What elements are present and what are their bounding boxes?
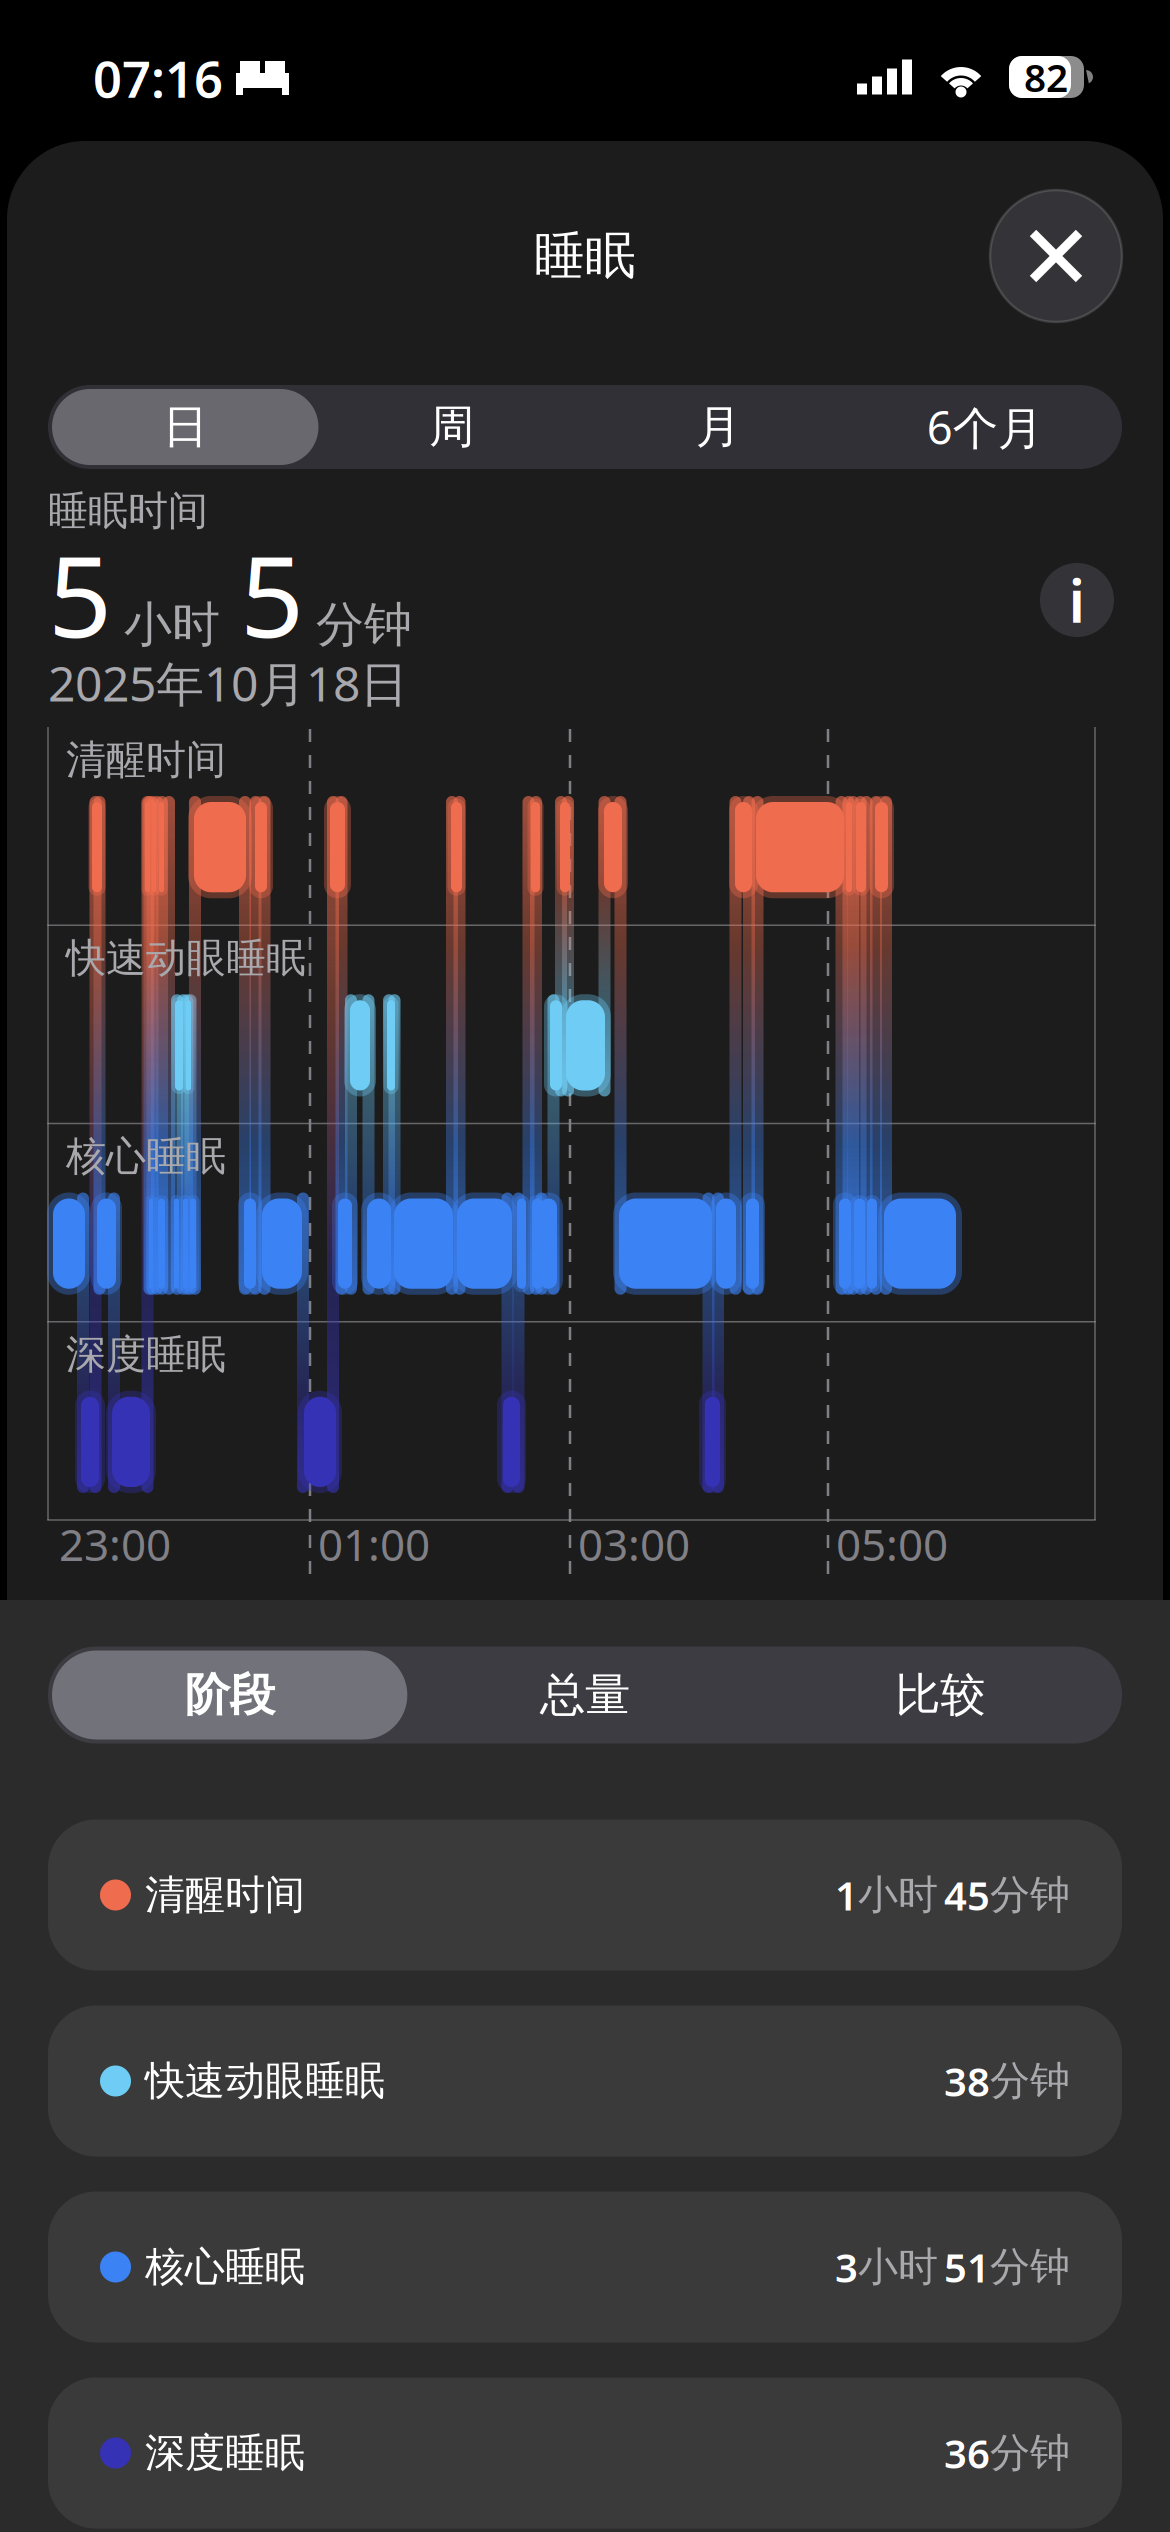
staticText: 比较: [895, 1667, 985, 1723]
button[interactable]: 总量: [407, 1650, 763, 1739]
button[interactable]: 信息: [1040, 563, 1114, 637]
button[interactable]: 6个月: [851, 389, 1118, 465]
staticText: 5: [48, 520, 112, 668]
button[interactable]: 周: [318, 389, 585, 465]
staticText: i: [1068, 561, 1085, 639]
staticText: 38: [944, 2054, 990, 2107]
staticText: 深度睡眠: [145, 2428, 305, 2477]
staticText: 分钟: [990, 2242, 1070, 2291]
staticText: 01:00: [318, 1515, 430, 1573]
staticText: 快速动眼睡眠: [145, 2056, 385, 2105]
button[interactable]: 月: [585, 389, 851, 465]
staticText: 分钟: [990, 2428, 1070, 2477]
staticText: 日: [163, 399, 208, 455]
staticText: 总量: [540, 1667, 630, 1723]
staticText: 小时: [858, 1870, 938, 1919]
button[interactable]: 阶段: [52, 1650, 407, 1739]
staticText: 03:00: [578, 1515, 690, 1573]
staticText: 睡眠: [534, 225, 636, 287]
staticText: 清醒时间: [66, 735, 226, 784]
staticText: 36: [944, 2426, 990, 2479]
staticText: 45: [944, 1868, 990, 1921]
staticText: 睡眠时间: [48, 486, 208, 535]
staticText: 月: [696, 399, 741, 455]
staticText: 3: [835, 2240, 858, 2293]
staticText: 分钟: [316, 595, 412, 654]
button[interactable]: 日: [52, 389, 318, 465]
staticText: 小时: [858, 2242, 938, 2291]
staticText: 07:16: [93, 44, 223, 112]
staticText: 核心睡眠: [66, 1132, 226, 1181]
staticText: 周: [429, 399, 474, 455]
staticText: 05:00: [836, 1515, 948, 1573]
staticText: 小时: [124, 595, 220, 654]
button[interactable]: 关闭: [990, 190, 1122, 322]
staticText: 6个月: [927, 397, 1043, 457]
staticText: 分钟: [990, 2056, 1070, 2105]
staticText: 1: [835, 1868, 858, 1921]
button[interactable]: 快速动眼睡眠: [48, 2005, 1122, 2156]
staticText: 2025年10月18日: [48, 651, 408, 715]
staticText: 82: [1024, 51, 1068, 103]
button[interactable]: 核心睡眠: [48, 2191, 1122, 2342]
staticText: 分钟: [990, 1870, 1070, 1919]
staticText: 5: [240, 520, 304, 668]
staticText: 快速动眼睡眠: [66, 934, 306, 983]
button[interactable]: 清醒时间: [48, 1819, 1122, 1970]
staticText: 核心睡眠: [145, 2242, 305, 2291]
staticText: 深度睡眠: [66, 1330, 226, 1379]
staticText: 23:00: [59, 1515, 171, 1573]
staticText: 51: [944, 2240, 990, 2293]
button[interactable]: 比较: [763, 1650, 1118, 1739]
button[interactable]: 深度睡眠: [48, 2377, 1122, 2528]
staticText: 清醒时间: [145, 1870, 305, 1919]
staticText: 阶段: [185, 1667, 275, 1723]
